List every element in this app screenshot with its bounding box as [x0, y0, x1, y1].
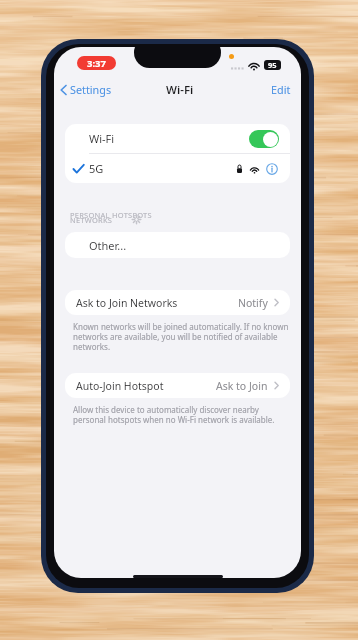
- staticText: Ask to Join Networks: [76, 296, 178, 310]
- staticText: Wi-Fi: [166, 82, 194, 98]
- button[interactable]: Wi-Fi on: [249, 130, 279, 148]
- staticText: Auto-Join Hotspot: [76, 379, 164, 393]
- staticText: 3:37: [87, 57, 106, 70]
- button[interactable]: Ask to Join Networks: [65, 290, 290, 315]
- staticText: Known networks will be joined automatica…: [73, 321, 291, 353]
- button[interactable]: Network info: [266, 163, 278, 175]
- button[interactable]: Other...: [65, 232, 290, 258]
- staticText: NETWORKS: [70, 215, 113, 225]
- button[interactable]: 5G: [65, 154, 290, 183]
- staticText: 5G: [89, 161, 104, 176]
- button[interactable]: Auto-Join Hotspot: [65, 373, 290, 398]
- staticText: PERSONAL HOTSPOTS: [70, 210, 152, 220]
- staticText: Wi-Fi: [89, 131, 115, 146]
- staticText: Notify: [238, 296, 268, 310]
- button[interactable]: Wi-Fi: [65, 124, 290, 153]
- staticText: Other...: [89, 238, 127, 253]
- staticText: Settings: [70, 82, 112, 97]
- staticText: Ask to Join: [216, 379, 268, 393]
- staticText: Allow this device to automatically disco…: [73, 404, 291, 426]
- button[interactable]: Settings: [57, 79, 115, 100]
- staticText: 95: [268, 60, 277, 70]
- button[interactable]: Edit: [269, 79, 293, 100]
